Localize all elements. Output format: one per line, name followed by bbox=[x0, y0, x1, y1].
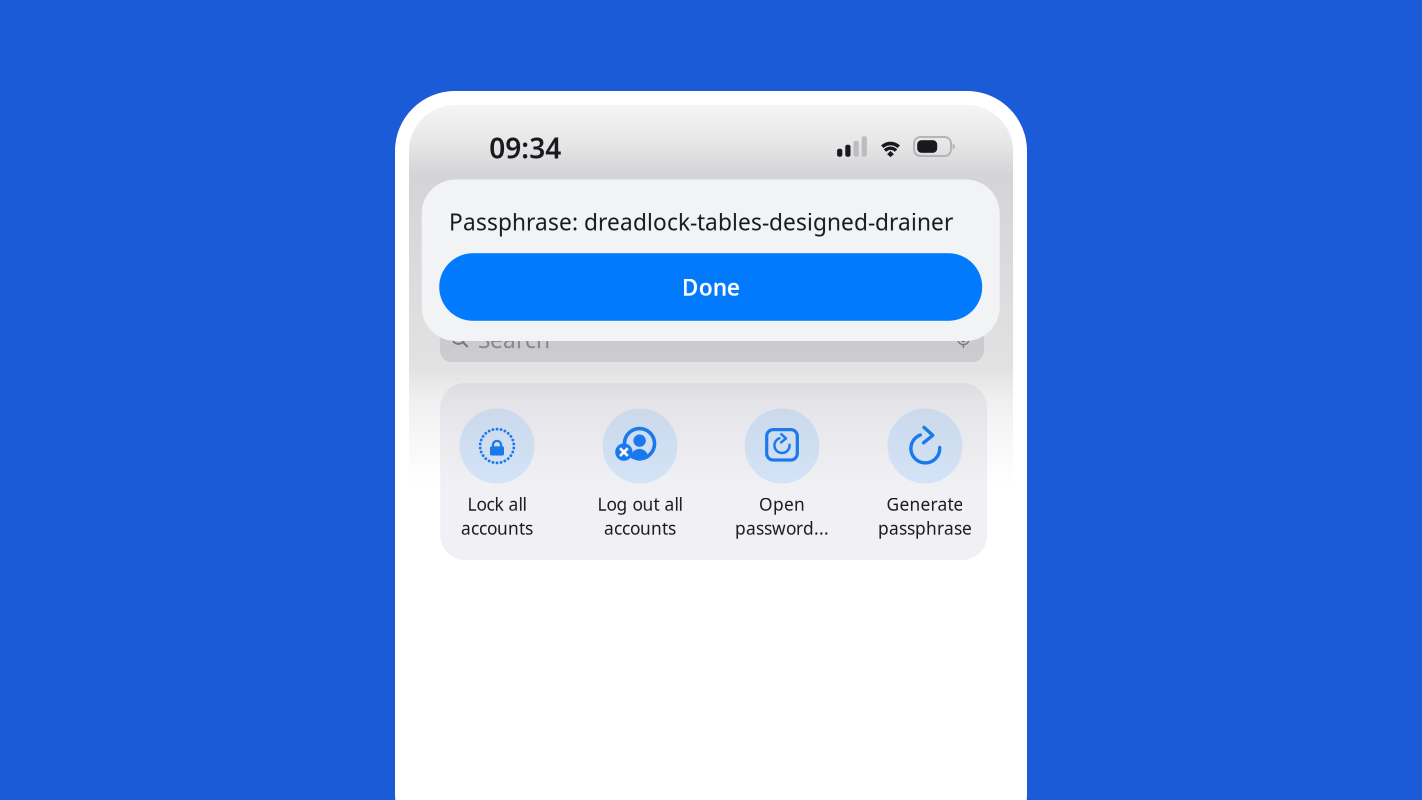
staticText: Generate bbox=[886, 492, 963, 515]
button[interactable]: Open bbox=[711, 408, 853, 548]
staticText: Lock all bbox=[467, 492, 526, 515]
staticText: Passphrase: dreadlock-tables-designed-dr… bbox=[449, 207, 953, 237]
staticText: password... bbox=[735, 516, 829, 539]
button[interactable]: Generate bbox=[854, 408, 996, 548]
button[interactable]: Lock all bbox=[426, 408, 568, 548]
staticText: passphrase bbox=[878, 516, 972, 539]
staticText: accounts bbox=[604, 516, 676, 539]
staticText: 09:34 bbox=[489, 129, 561, 166]
staticText: Done bbox=[682, 272, 740, 302]
button[interactable]: Done bbox=[439, 253, 982, 321]
staticText: accounts bbox=[461, 516, 533, 539]
staticText: Open bbox=[759, 492, 805, 515]
staticText: Search bbox=[478, 324, 550, 354]
staticText: Log out all bbox=[597, 492, 682, 515]
button[interactable]: Log out all bbox=[569, 408, 711, 548]
